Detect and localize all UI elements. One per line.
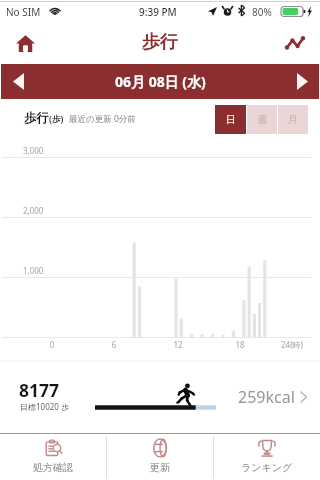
button[interactable]: ランキング <box>214 434 320 480</box>
button[interactable]: Statistics <box>278 26 312 60</box>
staticText: 処方確認 <box>33 461 73 474</box>
staticText: 8177 <box>19 378 60 402</box>
staticText: 24(時) <box>272 339 312 350</box>
staticText: 日 <box>226 113 236 126</box>
staticText: 18 <box>220 339 260 350</box>
staticText: 259kcal <box>238 386 295 408</box>
staticText: 歩行 <box>24 110 49 126</box>
staticText: 80% <box>252 5 272 19</box>
button[interactable]: Next day <box>285 64 319 99</box>
staticText: 6 <box>94 339 134 350</box>
staticText: 週 <box>257 113 267 126</box>
staticText: No SIM <box>6 5 41 19</box>
staticText: 最近の更新 0分前 <box>69 113 136 125</box>
staticText: 月 <box>288 113 298 126</box>
staticText: 3,000 <box>23 145 44 156</box>
staticText: 12 <box>158 339 198 350</box>
button[interactable]: 処方確認 <box>0 434 106 480</box>
staticText: 0 <box>32 339 72 350</box>
button[interactable]: 更新 <box>107 434 213 480</box>
staticText: 更新 <box>150 461 170 474</box>
button[interactable]: Previous day <box>1 64 35 99</box>
button[interactable]: Home <box>8 26 42 60</box>
button[interactable]: 8177 <box>0 361 320 434</box>
staticText: 2,000 <box>23 205 44 216</box>
button[interactable]: 日 <box>215 105 246 134</box>
staticText: 06月 08日 (水) <box>115 72 206 91</box>
button[interactable]: 月 <box>277 105 308 134</box>
button[interactable]: 週 <box>246 105 277 134</box>
staticText: (歩) <box>49 113 64 125</box>
staticText: 歩行 <box>142 31 178 54</box>
staticText: 目標10020 歩 <box>20 401 69 412</box>
staticText: 9:39 PM <box>139 5 177 19</box>
staticText: ランキング <box>241 461 293 474</box>
staticText: 1,000 <box>23 265 44 276</box>
